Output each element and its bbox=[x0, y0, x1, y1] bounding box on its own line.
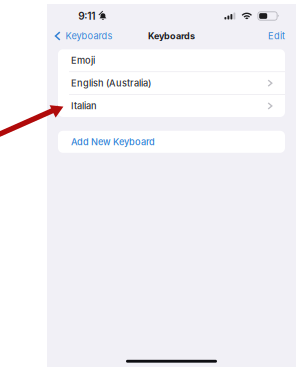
button[interactable]: Italian bbox=[58, 95, 285, 117]
staticText: Keyboards bbox=[66, 30, 113, 41]
staticText: 9:11 bbox=[78, 10, 95, 22]
button[interactable]: English (Australia) bbox=[58, 72, 285, 94]
button[interactable]: Add New Keyboard bbox=[58, 131, 285, 153]
staticText: Add New Keyboard bbox=[71, 136, 155, 147]
button[interactable]: Edit bbox=[268, 27, 296, 44]
staticText: English (Australia) bbox=[71, 78, 151, 89]
button[interactable]: Emoji bbox=[58, 49, 285, 71]
staticText: Emoji bbox=[71, 55, 95, 66]
staticText: Italian bbox=[71, 100, 97, 111]
staticText: Edit bbox=[268, 30, 285, 41]
staticText: Keyboards bbox=[148, 30, 195, 41]
button[interactable]: Keyboards bbox=[47, 27, 113, 44]
